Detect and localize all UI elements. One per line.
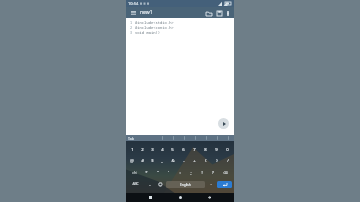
button[interactable]: ABC: [127, 179, 144, 189]
button[interactable]: Tab: [128, 136, 134, 141]
button[interactable]: Quick key: [168, 135, 179, 141]
staticText: -: [183, 158, 185, 164]
staticText: 0: [226, 147, 229, 153]
button[interactable]: Menu: [128, 8, 138, 18]
staticText: 9: [215, 147, 218, 153]
button[interactable]: !: [196, 168, 207, 178]
button[interactable]: 7: [189, 145, 200, 155]
staticText: ": [157, 170, 159, 176]
button[interactable]: Quick key: [201, 135, 212, 141]
button[interactable]: /: [222, 156, 233, 166]
button[interactable]: Enter: [217, 181, 232, 188]
staticText: 2: [130, 25, 133, 30]
button[interactable]: =\<: [127, 168, 141, 178]
staticText: 6: [182, 147, 185, 153]
staticText: (: [205, 158, 207, 164]
staticText: +: [193, 158, 196, 164]
button[interactable]: $: [147, 156, 157, 166]
button[interactable]: *: [141, 168, 152, 178]
staticText: #include<stdio.h>: [135, 20, 174, 25]
staticText: ?: [212, 170, 214, 176]
staticText: @: [130, 158, 134, 164]
button[interactable]: Backspace: [218, 168, 233, 178]
button[interactable]: 6: [178, 145, 189, 155]
button[interactable]: Run: [218, 118, 229, 129]
button[interactable]: &: [167, 156, 178, 166]
staticText: ): [216, 158, 218, 164]
button[interactable]: ": [152, 168, 163, 178]
button[interactable]: 5: [167, 145, 178, 155]
button[interactable]: 8: [200, 145, 211, 155]
staticText: #include<conio.h>: [135, 25, 174, 30]
button[interactable]: Quick key: [179, 135, 190, 141]
button[interactable]: :: [174, 168, 185, 178]
staticText: :: [179, 170, 181, 176]
staticText: 1: [131, 147, 134, 153]
button[interactable]: Open file: [204, 8, 214, 18]
button[interactable]: Home: [176, 193, 185, 202]
staticText: 1: [130, 20, 133, 25]
staticText: 7: [193, 147, 196, 153]
staticText: ': [168, 170, 169, 176]
staticText: 10:54: [128, 1, 139, 6]
button[interactable]: Save: [214, 8, 224, 18]
staticText: 3: [151, 147, 154, 153]
staticText: 4: [161, 147, 164, 153]
button[interactable]: 9: [211, 145, 222, 155]
button[interactable]: -: [178, 156, 189, 166]
staticText: &: [171, 158, 175, 164]
button[interactable]: Recents: [146, 193, 155, 202]
button[interactable]: 1: [127, 145, 137, 155]
staticText: 3: [130, 30, 133, 35]
button[interactable]: _: [157, 156, 167, 166]
button[interactable]: English: [166, 181, 205, 188]
button[interactable]: 2: [137, 145, 147, 155]
staticText: _: [161, 158, 163, 164]
button[interactable]: Back: [205, 193, 214, 202]
button[interactable]: .: [206, 179, 216, 189]
button[interactable]: 4: [157, 145, 167, 155]
staticText: 2: [141, 147, 144, 153]
staticText: ABC: [132, 182, 139, 186]
staticText: .: [210, 181, 212, 187]
button[interactable]: ,: [144, 179, 155, 189]
button[interactable]: +: [189, 156, 200, 166]
button[interactable]: 3: [147, 145, 157, 155]
button[interactable]: ): [211, 156, 222, 166]
staticText: English: [180, 183, 191, 187]
staticText: ⌫: [223, 171, 228, 175]
staticText: void main(): [135, 30, 161, 35]
button[interactable]: Quick key: [223, 135, 234, 141]
button[interactable]: Quick key: [190, 135, 201, 141]
staticText: $: [151, 158, 154, 164]
staticText: *: [145, 170, 148, 176]
button[interactable]: ?: [207, 168, 218, 178]
staticText: #: [141, 158, 144, 164]
button[interactable]: ;: [185, 168, 196, 178]
staticText: new1: [140, 9, 153, 16]
staticText: ;: [190, 170, 192, 176]
staticText: 8: [204, 147, 207, 153]
button[interactable]: #: [137, 156, 147, 166]
staticText: =\<: [132, 171, 137, 175]
button[interactable]: 0: [222, 145, 233, 155]
button[interactable]: (: [200, 156, 211, 166]
button[interactable]: ☺: [155, 179, 165, 189]
staticText: ☺: [158, 182, 163, 187]
staticText: !: [201, 170, 203, 176]
button[interactable]: @: [127, 156, 137, 166]
button[interactable]: Quick key: [212, 135, 223, 141]
staticText: ,: [149, 181, 151, 187]
button[interactable]: ': [163, 168, 174, 178]
staticText: 5: [171, 147, 174, 153]
staticText: /: [227, 158, 229, 164]
button[interactable]: More options: [224, 9, 232, 17]
button[interactable]: Quick key: [157, 135, 168, 141]
